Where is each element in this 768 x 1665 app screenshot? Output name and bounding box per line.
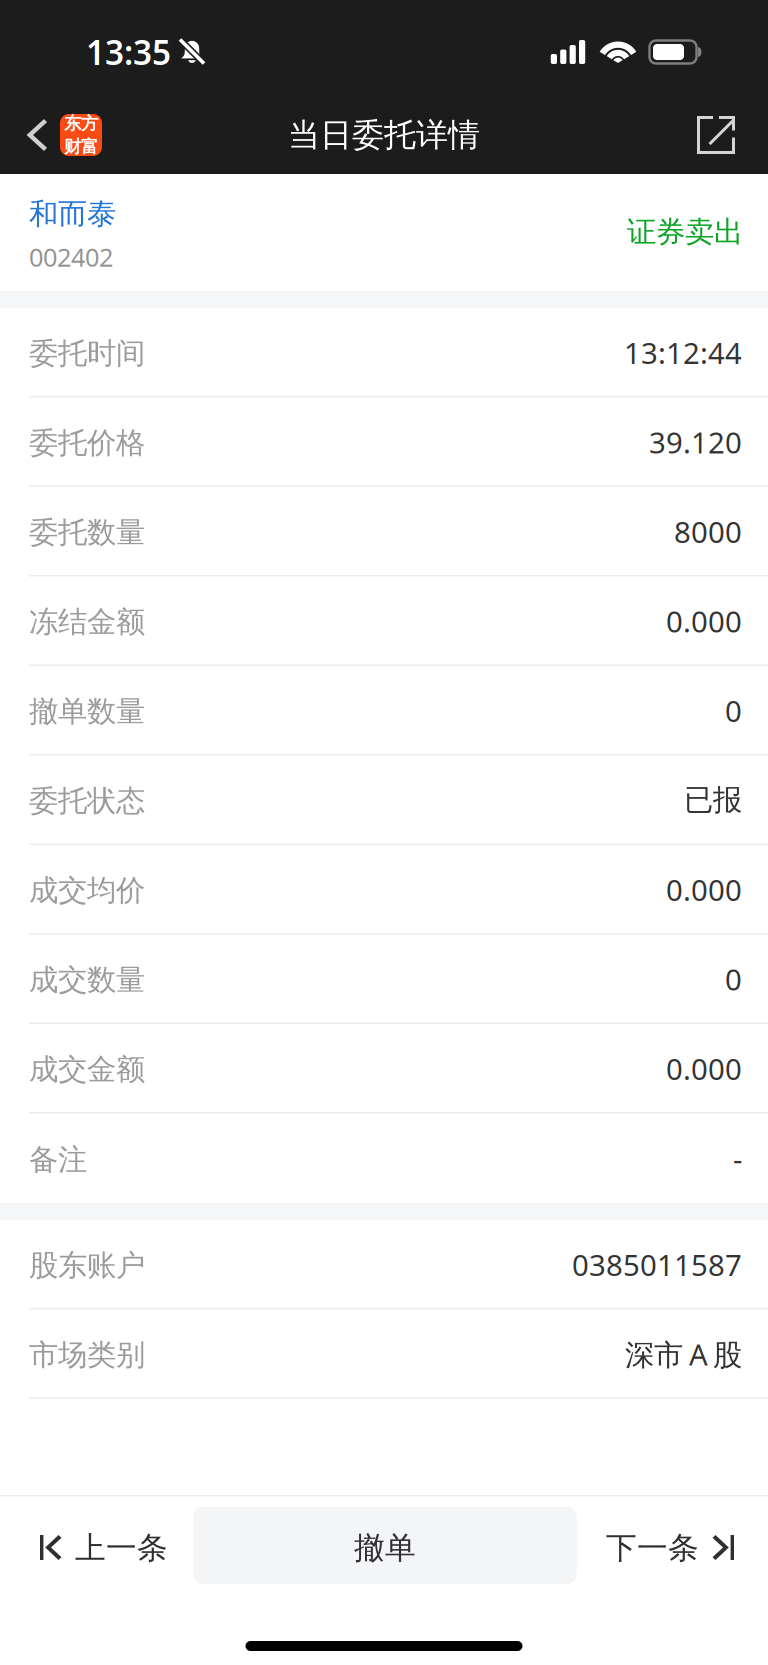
staticText: 0385011587 — [572, 1245, 742, 1284]
staticText: 委托时间 — [29, 335, 145, 371]
staticText: 成交数量 — [29, 962, 145, 998]
staticText: 成交均价 — [29, 872, 145, 908]
staticText: 当日委托详情 — [288, 115, 480, 155]
staticText: 0.000 — [666, 1049, 742, 1088]
button[interactable]: 分享 — [683, 108, 768, 162]
staticText: 0.000 — [666, 601, 742, 640]
staticText: 已报 — [684, 782, 742, 818]
staticText: 和而泰 — [29, 196, 116, 232]
staticText: 下一条 — [606, 1529, 699, 1567]
staticText: 股东账户 — [29, 1247, 145, 1283]
staticText: 0 — [725, 959, 742, 998]
staticText: 证券卖出 — [627, 214, 743, 250]
button[interactable]: 撤单 — [193, 1507, 577, 1584]
staticText: 002402 — [29, 240, 113, 274]
staticText: 撤单 — [354, 1529, 416, 1567]
button[interactable]: 返回 — [0, 106, 112, 164]
staticText: 39.120 — [649, 422, 742, 461]
staticText: 13:35 — [86, 30, 171, 74]
staticText: 委托数量 — [29, 514, 145, 550]
staticText: 上一条 — [75, 1529, 168, 1567]
staticText: 8000 — [674, 512, 742, 551]
staticText: 东方 — [64, 113, 98, 134]
staticText: 13:12:44 — [624, 333, 742, 372]
staticText: 0.000 — [666, 870, 742, 909]
staticText: 深市 A 股 — [625, 1334, 742, 1373]
button[interactable]: 上一条 — [0, 1497, 193, 1593]
staticText: 委托状态 — [29, 783, 145, 819]
staticText: 委托价格 — [29, 425, 145, 461]
staticText: 撤单数量 — [29, 693, 145, 729]
staticText: - — [733, 1139, 742, 1178]
staticText: 市场类别 — [29, 1337, 145, 1373]
staticText: 0 — [725, 691, 742, 730]
button[interactable]: 和而泰 — [29, 196, 116, 274]
staticText: 成交金额 — [29, 1051, 145, 1087]
button[interactable]: 下一条 — [577, 1497, 768, 1593]
staticText: 冻结金额 — [29, 604, 145, 640]
staticText: 备注 — [29, 1142, 87, 1178]
staticText: 财富 — [64, 136, 98, 157]
